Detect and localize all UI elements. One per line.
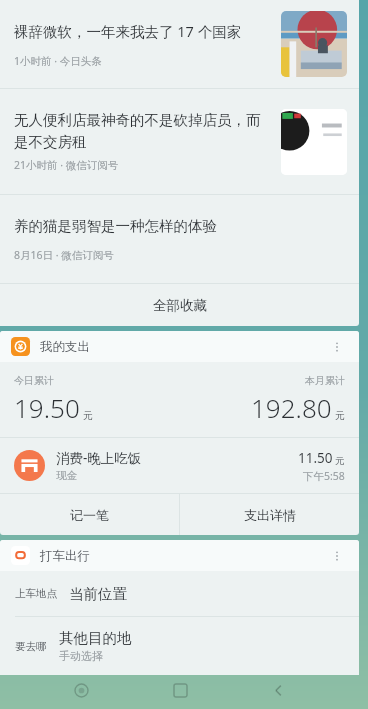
button[interactable]: 全部收藏 bbox=[0, 284, 359, 326]
staticText: 8月16日 · 微信订阅号 bbox=[14, 248, 114, 262]
staticText: 全部收藏 bbox=[153, 297, 207, 314]
staticText: 记一笔 bbox=[70, 507, 109, 523]
staticText: 今日累计 bbox=[14, 374, 54, 387]
staticText: 现金 bbox=[56, 469, 77, 482]
staticText: 192.80 bbox=[251, 390, 332, 425]
staticText: 1小时前 · 今日头条 bbox=[14, 54, 102, 68]
staticText: 我的支出 bbox=[40, 339, 90, 355]
button[interactable]: More options bbox=[327, 337, 347, 357]
button[interactable]: 裸辞微软，一年来我去了 17 个国家 bbox=[0, 0, 359, 88]
button[interactable]: 打车出行 bbox=[0, 540, 359, 571]
staticText: 11.50 bbox=[298, 449, 333, 467]
button[interactable]: 消费-晚上吃饭 bbox=[0, 438, 359, 493]
staticText: 下午5:58 bbox=[303, 469, 345, 483]
button[interactable]: 无人便利店最神奇的不是砍掉店员，而是不交房租 bbox=[0, 89, 359, 194]
staticText: 19.50 bbox=[14, 390, 80, 425]
staticText: 21小时前 · 微信订阅号 bbox=[14, 158, 119, 172]
button[interactable]: 我的支出 bbox=[0, 331, 359, 362]
staticText: 上车地点 bbox=[15, 587, 57, 600]
button[interactable]: 记一笔 bbox=[0, 494, 179, 535]
button[interactable]: Back bbox=[261, 673, 295, 707]
staticText: 本月累计 bbox=[305, 374, 345, 387]
button[interactable]: 支出详情 bbox=[180, 494, 359, 535]
staticText: 其他目的地 bbox=[59, 629, 132, 647]
staticText: 消费-晚上吃饭 bbox=[56, 449, 142, 467]
staticText: 支出详情 bbox=[244, 507, 296, 523]
button[interactable]: More options bbox=[327, 546, 347, 566]
staticText: 要去哪 bbox=[15, 640, 47, 653]
button[interactable]: 上车地点 bbox=[0, 571, 359, 616]
button[interactable]: Recents bbox=[64, 673, 98, 707]
staticText: 裸辞微软，一年来我去了 17 个国家 bbox=[14, 21, 242, 41]
button[interactable]: 要去哪 bbox=[0, 617, 359, 675]
button[interactable]: 今日累计 bbox=[0, 362, 359, 437]
staticText: 元 bbox=[83, 409, 93, 422]
staticText: 元 bbox=[335, 455, 345, 467]
button[interactable]: Home bbox=[163, 673, 197, 707]
staticText: 元 bbox=[335, 409, 345, 422]
staticText: 手动选择 bbox=[59, 649, 103, 663]
staticText: 打车出行 bbox=[40, 548, 90, 564]
staticText: 当前位置 bbox=[69, 585, 127, 603]
staticText: 无人便利店最神奇的不是砍掉店员，而是不交房租 bbox=[14, 111, 271, 152]
button[interactable]: 养的猫是弱智是一种怎样的体验 bbox=[0, 195, 359, 283]
staticText: 养的猫是弱智是一种怎样的体验 bbox=[14, 217, 217, 235]
